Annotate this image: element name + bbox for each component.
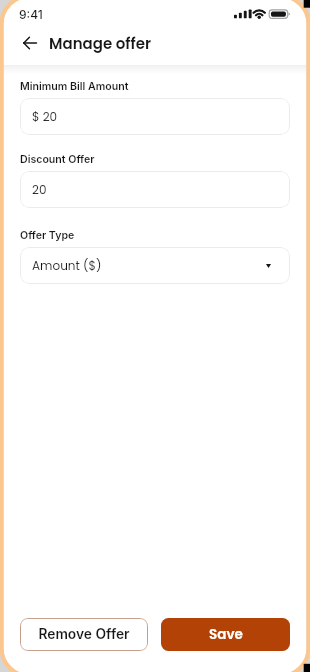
staticText: Minimum Bill Amount bbox=[20, 80, 129, 93]
staticText: 20 bbox=[32, 181, 47, 198]
button[interactable]: $ 20 bbox=[20, 98, 290, 135]
staticText: 9:41 bbox=[19, 7, 43, 22]
button[interactable]: Remove Offer bbox=[20, 618, 148, 651]
button[interactable]: Back bbox=[19, 32, 41, 54]
staticText: $ 20 bbox=[32, 108, 58, 125]
staticText: Discount Offer bbox=[20, 153, 95, 166]
button[interactable]: Save bbox=[161, 618, 290, 651]
staticText: Amount ($) bbox=[32, 257, 102, 274]
staticText: Save bbox=[209, 625, 243, 644]
staticText: Offer Type bbox=[20, 229, 75, 242]
staticText: Manage offer bbox=[49, 33, 151, 54]
button[interactable]: Amount ($) bbox=[20, 247, 290, 284]
button[interactable]: 20 bbox=[20, 171, 290, 208]
staticText: Remove Offer bbox=[38, 626, 130, 643]
